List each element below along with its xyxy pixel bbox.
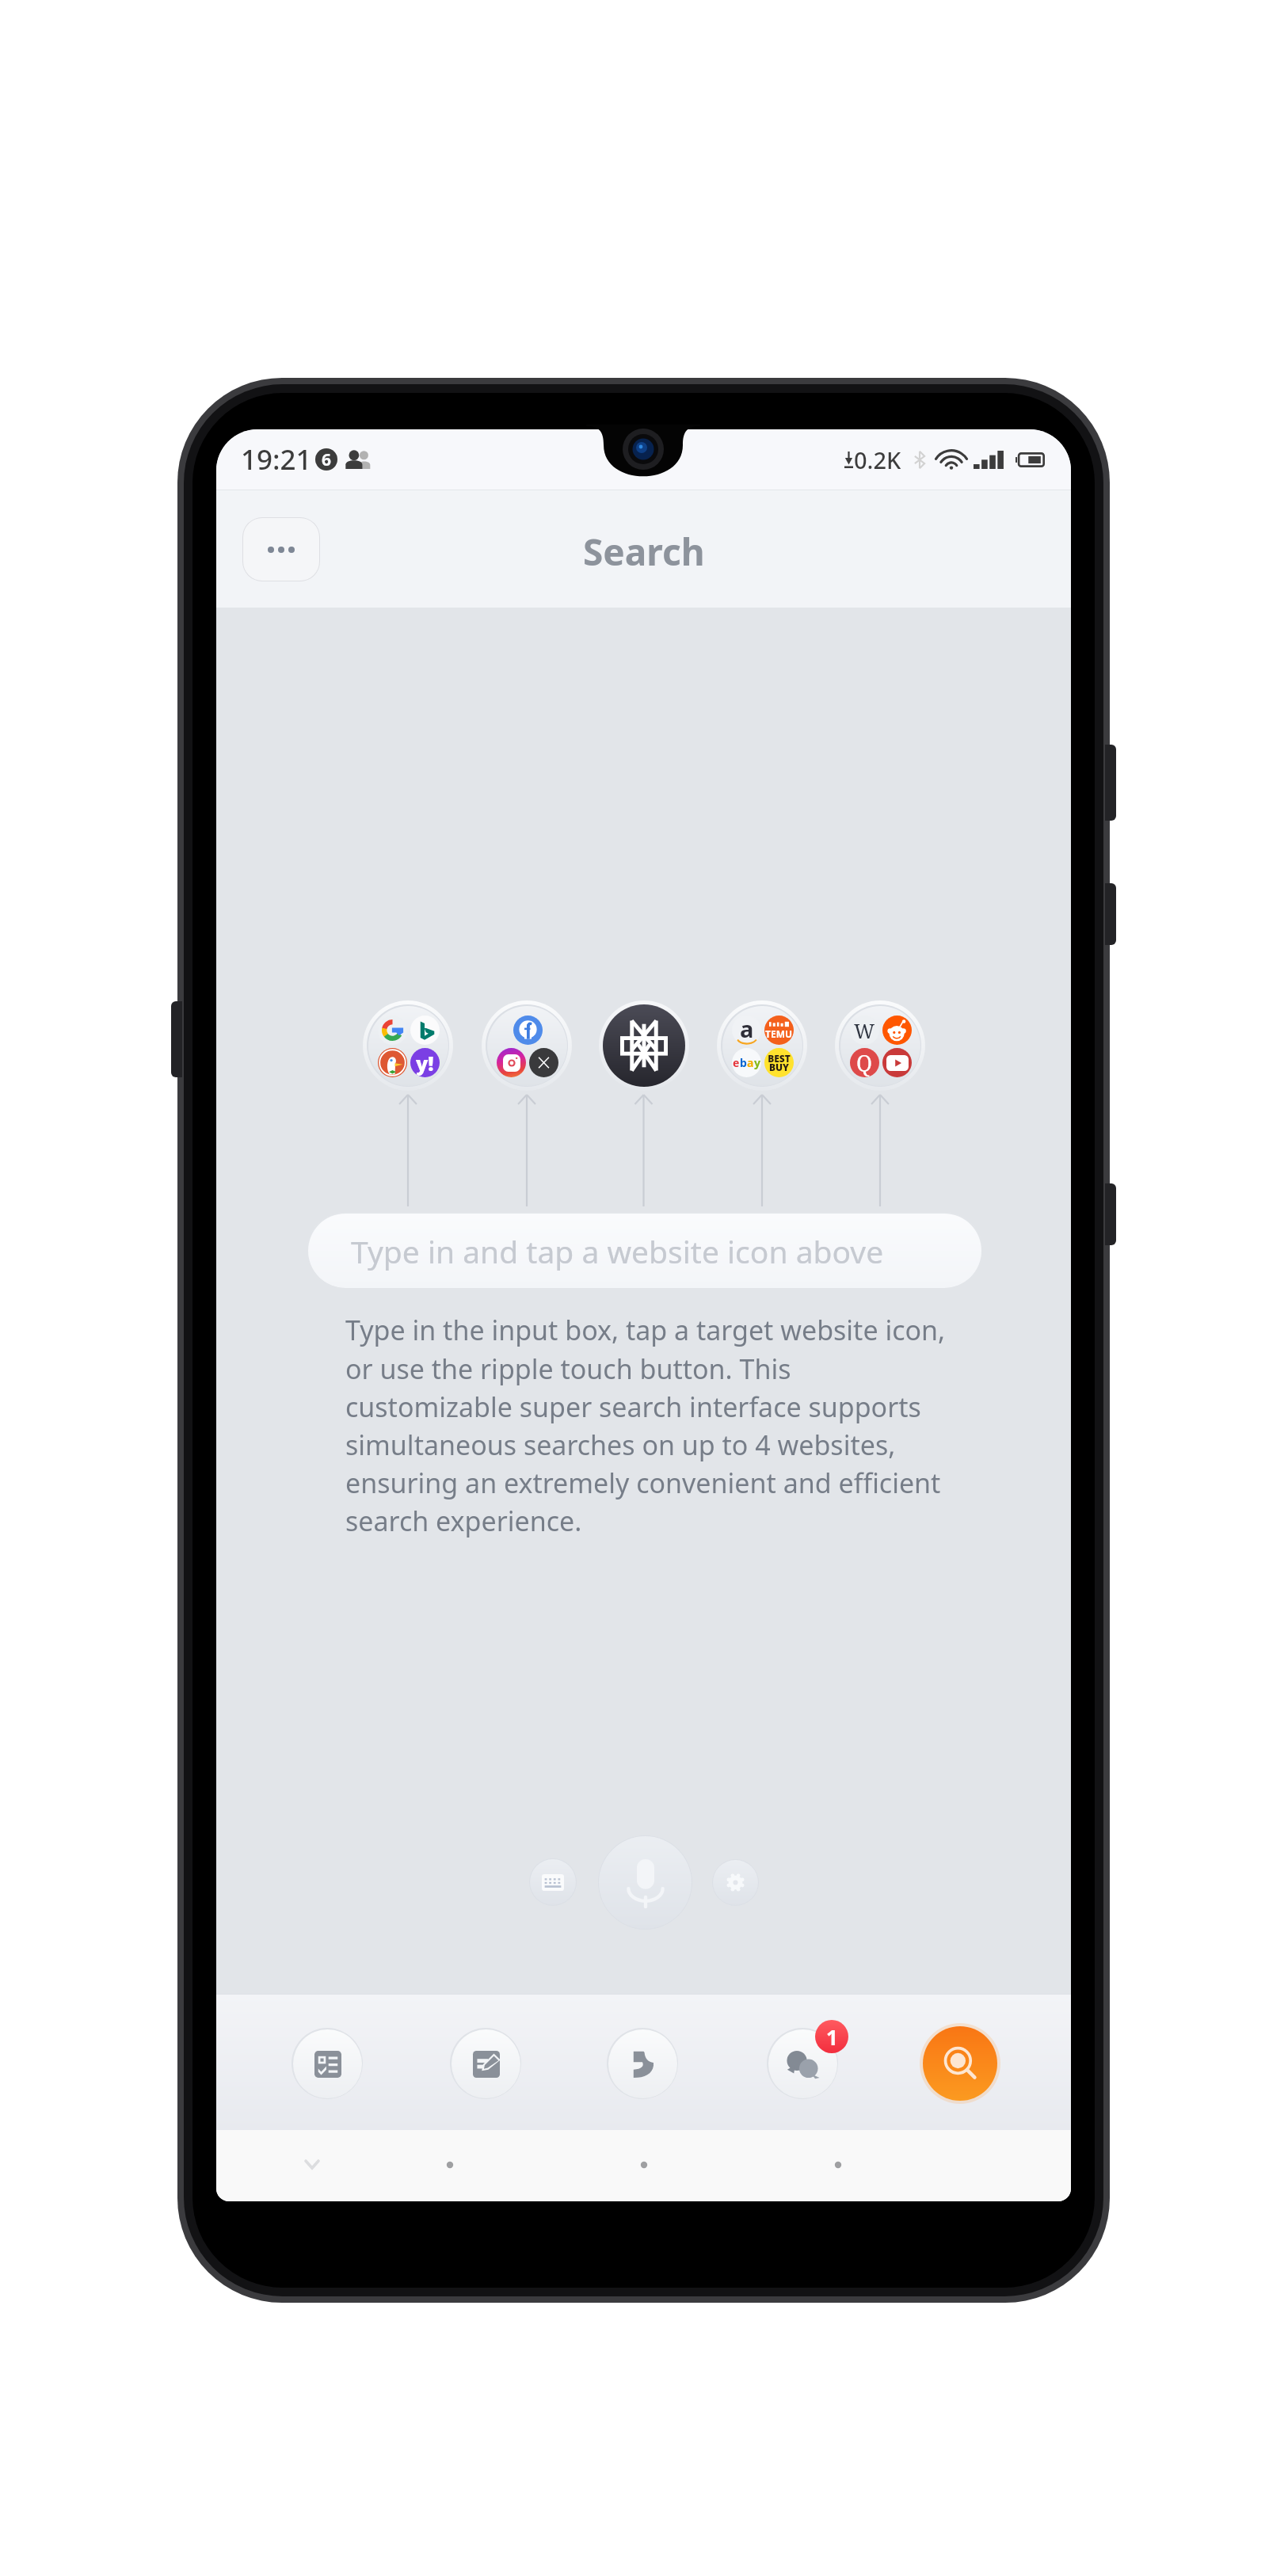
button[interactable]: More options xyxy=(242,517,320,581)
button[interactable]: Knowledge sites group xyxy=(835,1000,925,1091)
staticText: a xyxy=(747,1055,754,1070)
staticText: y xyxy=(754,1055,760,1070)
staticText: Type in and tap a website icon above xyxy=(351,1230,884,1272)
button[interactable]: Search engines group xyxy=(363,1000,453,1091)
staticText: Search xyxy=(583,527,705,577)
staticText: W xyxy=(854,1017,875,1044)
button[interactable]: Dialer xyxy=(607,2028,678,2099)
staticText: a xyxy=(740,1016,754,1042)
staticText: b xyxy=(740,1055,747,1070)
button[interactable]: Voice search xyxy=(598,1835,692,1930)
staticText: 6 xyxy=(322,448,332,471)
staticText: y! xyxy=(416,1050,434,1077)
button[interactable]: Settings xyxy=(712,1859,759,1906)
staticText: Type in the input box, tap a target webs… xyxy=(345,1312,979,1539)
button[interactable]: Open app xyxy=(599,1000,689,1091)
button[interactable]: Contacts xyxy=(292,2028,363,2099)
button[interactable]: Notes xyxy=(450,2028,521,2099)
staticText: Q xyxy=(856,1048,873,1077)
button[interactable]: Search xyxy=(923,2026,997,2101)
staticText: BEST BUY xyxy=(768,1052,791,1074)
staticText: TEMU xyxy=(765,1027,793,1040)
staticText: 1 xyxy=(826,2023,838,2051)
staticText: e xyxy=(733,1055,740,1070)
staticText: 19:21 xyxy=(241,440,312,478)
button[interactable]: Messages xyxy=(767,2028,838,2099)
button[interactable]: Type in and tap a website icon above xyxy=(307,1212,982,1288)
button[interactable]: Shopping sites group xyxy=(717,1000,807,1091)
button[interactable]: Keyboard xyxy=(529,1858,577,1906)
staticText: 0.2K xyxy=(854,444,901,475)
button[interactable]: Social networks group xyxy=(482,1000,572,1091)
